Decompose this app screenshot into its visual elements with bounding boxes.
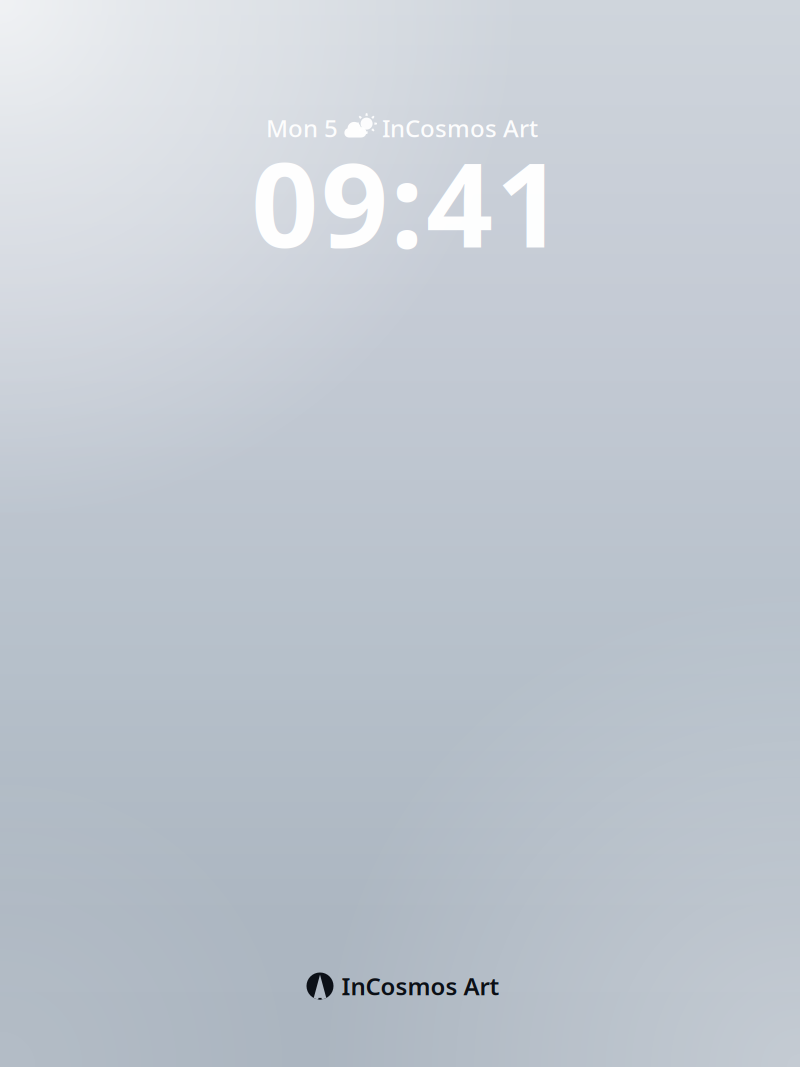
staticText: InCosmos Art: [376, 112, 538, 144]
staticText: 09:41: [251, 124, 563, 280]
staticText: Mon 5: [266, 112, 344, 144]
button[interactable]: Mon 5: [142, 113, 662, 143]
staticText: InCosmos Art: [341, 970, 499, 1002]
button[interactable]: 09:41: [147, 147, 667, 257]
button[interactable]: InCosmos Art: [293, 969, 513, 1003]
